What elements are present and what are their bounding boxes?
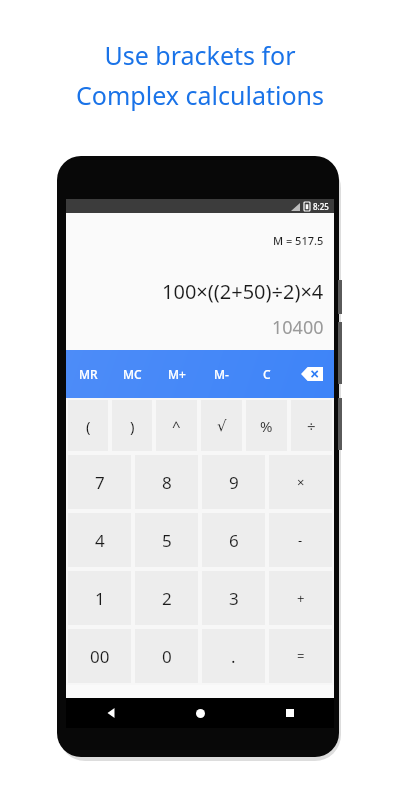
- button[interactable]: MR: [66, 350, 110, 398]
- button[interactable]: 4: [68, 513, 131, 567]
- staticText: √: [217, 417, 227, 434]
- staticText: ×: [297, 473, 305, 491]
- staticText: MC: [123, 366, 142, 382]
- staticText: 9: [229, 471, 239, 494]
- staticText: 3: [229, 587, 239, 610]
- staticText: Use brackets for: [104, 38, 296, 72]
- button[interactable]: .: [202, 629, 265, 683]
- button[interactable]: Back: [66, 698, 156, 728]
- button[interactable]: 3: [202, 571, 265, 625]
- staticText: =: [297, 647, 305, 665]
- staticText: 5: [162, 529, 172, 552]
- button[interactable]: Backspace: [289, 350, 334, 398]
- button[interactable]: ÷: [291, 400, 332, 451]
- staticText: ÷: [307, 416, 316, 436]
- staticText: M+: [168, 366, 186, 382]
- button[interactable]: 2: [135, 571, 198, 625]
- staticText: 7: [95, 471, 105, 494]
- staticText: 4: [95, 529, 105, 552]
- button[interactable]: 7: [68, 455, 131, 509]
- button[interactable]: √: [201, 400, 242, 451]
- button[interactable]: 6: [202, 513, 265, 567]
- staticText: 1: [95, 587, 105, 610]
- staticText: ): [130, 416, 135, 436]
- staticText: 10400: [272, 315, 324, 340]
- button[interactable]: MC: [110, 350, 154, 398]
- staticText: +: [297, 589, 305, 607]
- button[interactable]: 00: [68, 629, 131, 683]
- staticText: %: [260, 416, 273, 436]
- staticText: 00: [90, 645, 110, 668]
- staticText: C: [263, 366, 271, 382]
- button[interactable]: +: [269, 571, 332, 625]
- staticText: .: [231, 645, 236, 668]
- button[interactable]: M-: [199, 350, 244, 398]
- staticText: ^: [172, 416, 181, 436]
- staticText: Complex calculations: [76, 78, 324, 112]
- button[interactable]: 8: [135, 455, 198, 509]
- staticText: 8:25: [313, 201, 329, 212]
- button[interactable]: 9: [202, 455, 265, 509]
- button[interactable]: (: [68, 400, 108, 451]
- button[interactable]: C: [244, 350, 289, 398]
- button[interactable]: 1: [68, 571, 131, 625]
- button[interactable]: %: [246, 400, 287, 451]
- staticText: M = 517.5: [273, 233, 324, 248]
- button[interactable]: 5: [135, 513, 198, 567]
- button[interactable]: ): [112, 400, 152, 451]
- button[interactable]: ^: [156, 400, 197, 451]
- staticText: 2: [162, 587, 172, 610]
- button[interactable]: 0: [135, 629, 198, 683]
- staticText: M-: [214, 366, 229, 382]
- button[interactable]: -: [269, 513, 332, 567]
- staticText: 8: [162, 471, 172, 494]
- staticText: -: [298, 531, 303, 549]
- button[interactable]: =: [269, 629, 332, 683]
- staticText: (: [86, 416, 91, 436]
- staticText: 0: [162, 645, 172, 668]
- button[interactable]: M+: [154, 350, 199, 398]
- staticText: 6: [229, 529, 239, 552]
- staticText: MR: [79, 366, 98, 382]
- staticText: 100×((2+50)÷2)×4: [162, 278, 324, 305]
- button[interactable]: Recents: [245, 698, 334, 728]
- button[interactable]: ×: [269, 455, 332, 509]
- button[interactable]: Home: [156, 698, 245, 728]
